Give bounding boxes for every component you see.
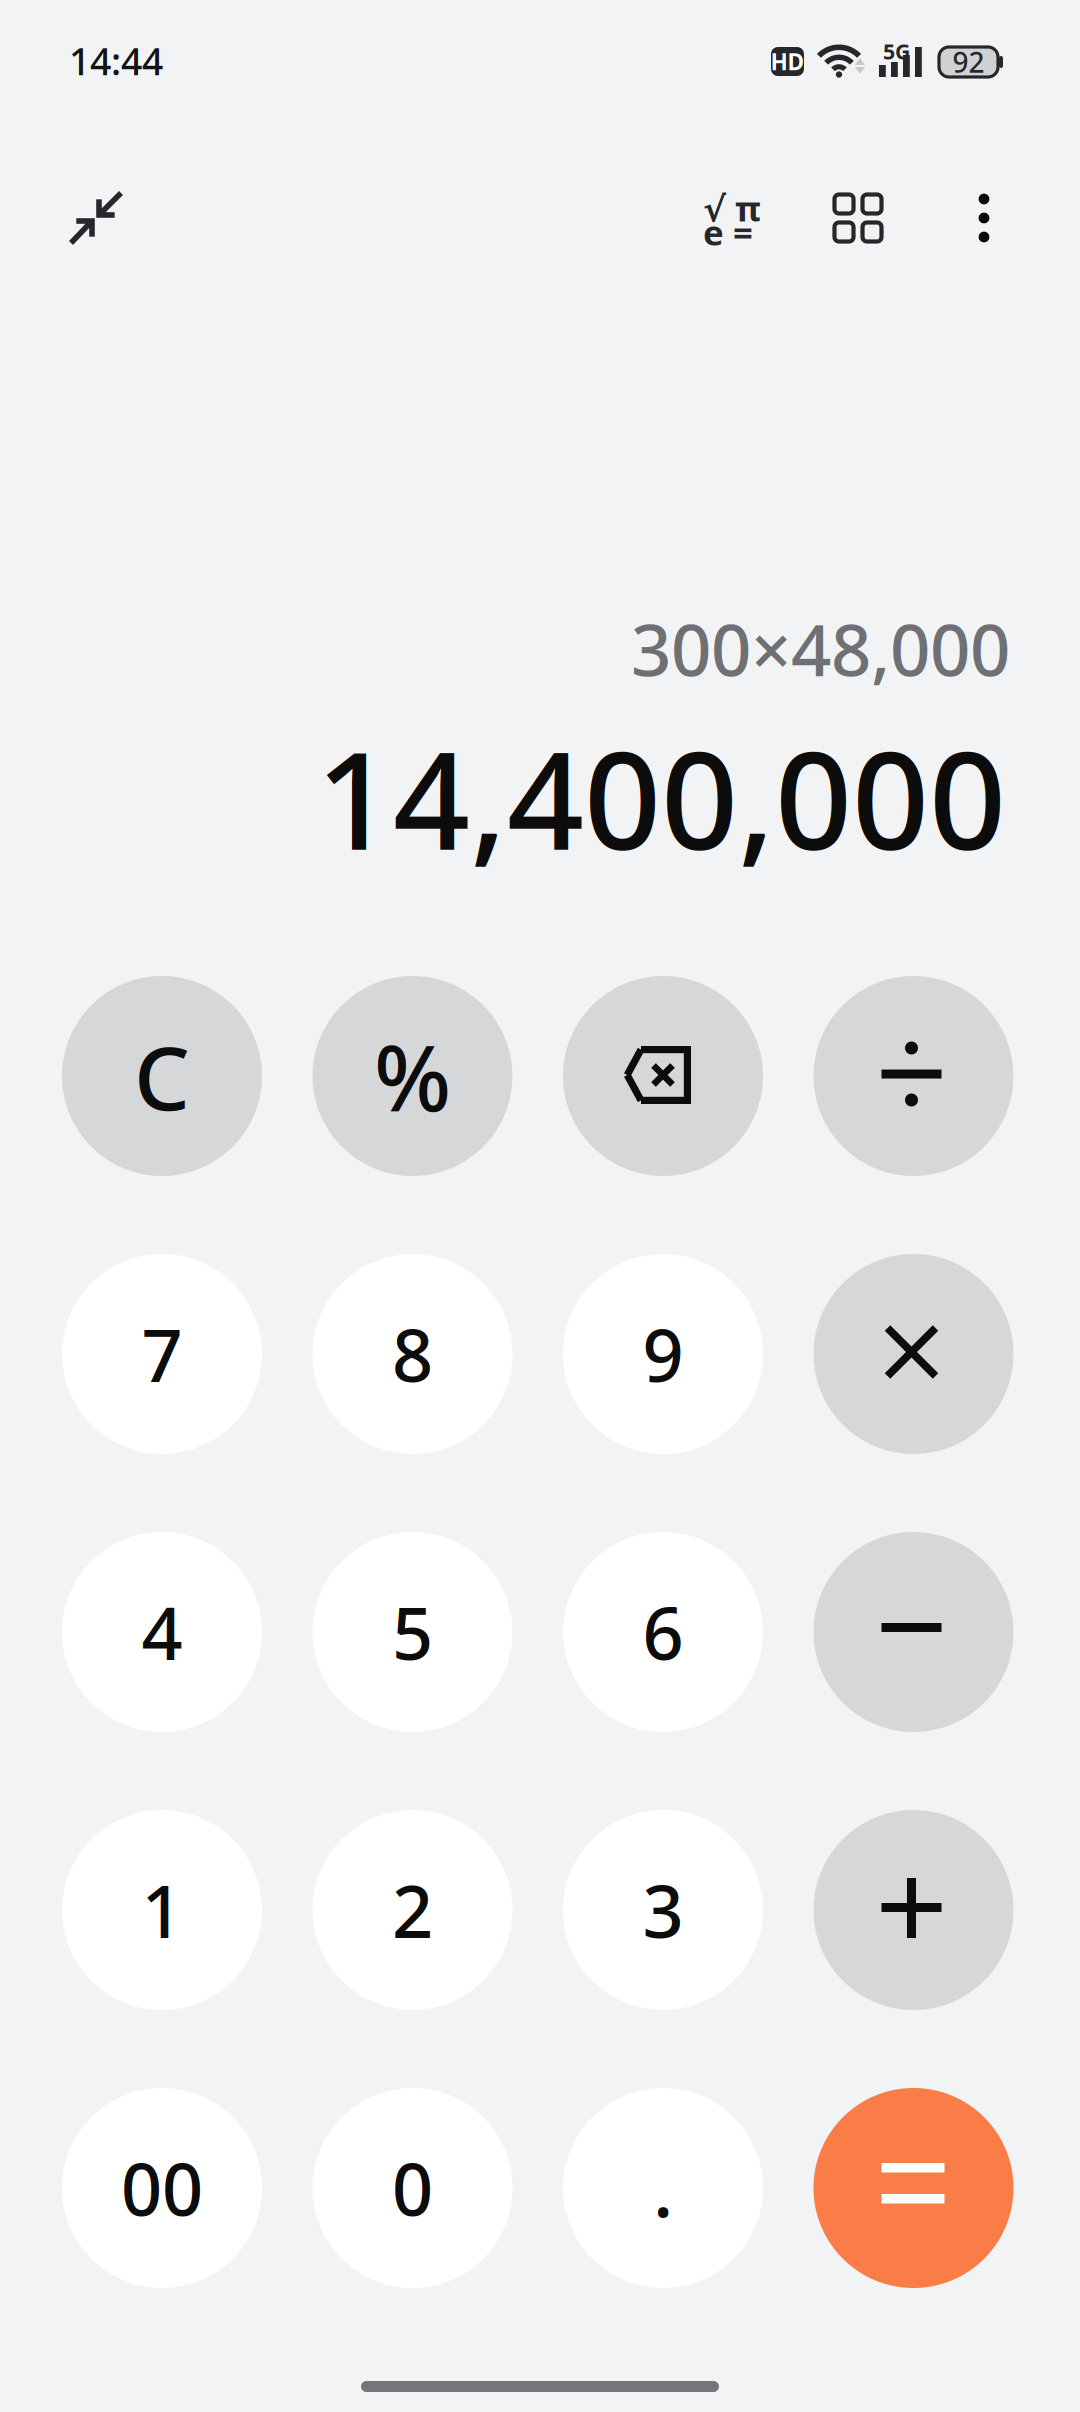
staticText: % (374, 1016, 451, 1136)
staticText: 300×48,000 (631, 602, 1010, 696)
button[interactable]: Collapse (48, 170, 144, 266)
button[interactable]: 0 (312, 2088, 512, 2288)
staticText: . (653, 2138, 673, 2238)
staticText: 5G (883, 37, 910, 65)
staticText: 00 (121, 2140, 203, 2236)
button[interactable]: More options (936, 170, 1032, 266)
staticText: 14,400,000 (316, 708, 1006, 887)
button[interactable]: 9 (563, 1254, 763, 1454)
staticText: 1 (141, 1862, 182, 1958)
button[interactable]: 2 (312, 1810, 512, 2010)
staticText: e = (703, 209, 753, 255)
staticText: 2 (392, 1862, 433, 1958)
button[interactable]: Multiply (813, 1254, 1013, 1454)
button[interactable]: Clear (62, 976, 262, 1176)
button[interactable]: 5 (312, 1532, 512, 1732)
button[interactable]: Percent (312, 976, 512, 1176)
button[interactable]: 00 (62, 2088, 262, 2288)
staticText: 6 (642, 1584, 683, 1680)
staticText: 14:44 (69, 36, 163, 86)
staticText: C (134, 1018, 190, 1134)
button[interactable]: Decimal point (563, 2088, 763, 2288)
staticText: 5 (392, 1584, 433, 1680)
button[interactable]: 4 (62, 1532, 262, 1732)
staticText: 9 (642, 1306, 683, 1402)
staticText: HD (770, 46, 804, 76)
button[interactable]: 8 (312, 1254, 512, 1454)
button[interactable]: Equals (813, 2088, 1013, 2288)
button[interactable]: Divide (813, 976, 1013, 1176)
button[interactable]: 7 (62, 1254, 262, 1454)
button[interactable]: 6 (563, 1532, 763, 1732)
staticText: 8 (392, 1306, 433, 1402)
button[interactable]: Subtract (813, 1532, 1013, 1732)
button[interactable]: Scientific calculator (684, 170, 780, 266)
button[interactable]: Add (813, 1810, 1013, 2010)
staticText: 3 (642, 1862, 683, 1958)
button[interactable]: Backspace (563, 976, 763, 1176)
button[interactable]: 3 (563, 1810, 763, 2010)
staticText: 0 (392, 2140, 433, 2236)
staticText: 7 (141, 1306, 182, 1402)
button[interactable]: Unit converter (810, 170, 906, 266)
staticText: 92 (952, 43, 984, 81)
staticText: 4 (141, 1584, 182, 1680)
staticText: √ π (703, 185, 761, 231)
button[interactable]: 1 (62, 1810, 262, 2010)
